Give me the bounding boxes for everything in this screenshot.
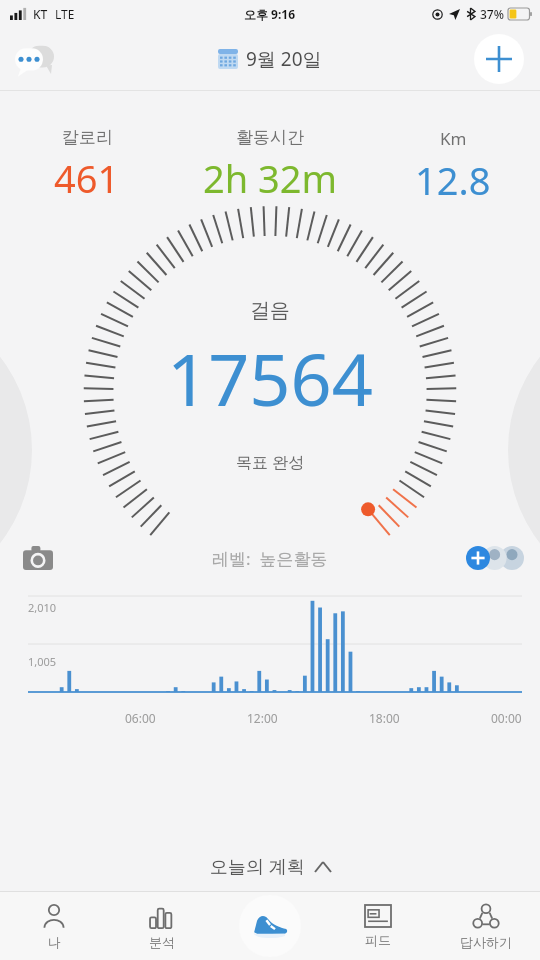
staticText: 레벨: 높은활동 xyxy=(212,547,328,570)
button[interactable]: 오늘의 계획 xyxy=(0,841,540,891)
staticText: 분석 xyxy=(149,934,175,950)
staticText: 나 xyxy=(48,934,61,950)
staticText: 12.8 xyxy=(415,154,491,206)
button[interactable]: Friends xyxy=(466,546,524,570)
button[interactable]: 나 xyxy=(0,892,108,960)
staticText: 목표 완성 xyxy=(236,451,305,473)
button[interactable]: 2,010 xyxy=(0,580,540,728)
staticText: 오늘의 계획 xyxy=(210,854,305,879)
staticText: 461 xyxy=(54,152,120,204)
staticText: 37% xyxy=(480,6,504,22)
staticText: 06:00 xyxy=(125,710,156,726)
button[interactable]: 피드 xyxy=(324,892,432,960)
button[interactable]: Km xyxy=(366,127,540,206)
button[interactable]: Camera xyxy=(20,540,56,576)
staticText: LTE xyxy=(55,6,75,22)
staticText: 2,010 xyxy=(28,600,57,615)
staticText: Km xyxy=(440,127,467,150)
button[interactable]: 활동시간 xyxy=(174,127,366,204)
button[interactable]: 9월 20일 xyxy=(212,42,328,76)
staticText: 00:00 xyxy=(491,710,522,726)
button[interactable]: Messages xyxy=(8,31,64,87)
button[interactable]: 걸음 xyxy=(0,206,540,536)
staticText: 17564 xyxy=(167,329,373,427)
staticText: 오후 9:16 xyxy=(244,6,296,22)
button[interactable]: Add xyxy=(474,34,524,84)
button[interactable]: Steps xyxy=(216,892,324,960)
button[interactable]: 칼로리 xyxy=(0,127,174,204)
staticText: 활동시간 xyxy=(236,127,304,148)
staticText: 걸음 xyxy=(250,298,290,323)
staticText: 1,005 xyxy=(28,654,57,669)
staticText: 피드 xyxy=(365,932,391,948)
staticText: 칼로리 xyxy=(62,127,113,148)
staticText: 12:00 xyxy=(247,710,278,726)
button[interactable]: 분석 xyxy=(108,892,216,960)
staticText: 답사하기 xyxy=(460,934,512,950)
staticText: 9월 20일 xyxy=(246,46,322,72)
staticText: KT xyxy=(33,6,48,22)
button[interactable]: 답사하기 xyxy=(432,892,540,960)
staticText: 2h 32m xyxy=(203,152,338,204)
staticText: 18:00 xyxy=(369,710,400,726)
